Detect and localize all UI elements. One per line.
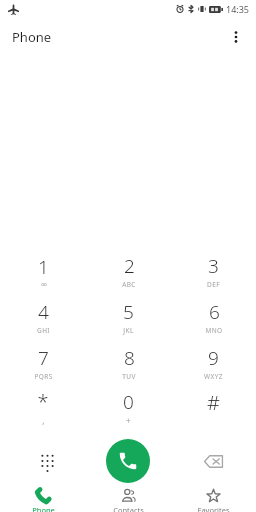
button[interactable]: * <box>0 386 86 428</box>
staticText: Phone <box>12 28 52 46</box>
button[interactable]: Call <box>106 439 150 483</box>
staticText: , <box>42 415 45 426</box>
staticText: ABC <box>122 280 136 289</box>
button[interactable]: 5 <box>86 294 171 340</box>
button[interactable]: 6 <box>171 294 256 340</box>
staticText: 2 <box>124 253 135 279</box>
staticText: 14:35 <box>226 3 250 15</box>
staticText: 0 <box>123 389 134 415</box>
staticText: 1 <box>38 254 49 280</box>
staticText: + <box>126 415 131 426</box>
button[interactable]: 9 <box>171 340 256 386</box>
staticText: Phone <box>32 505 55 512</box>
staticText: PQRS <box>34 372 53 381</box>
staticText: 7 <box>38 345 49 371</box>
button[interactable]: Keypad <box>30 444 64 478</box>
staticText: 3 <box>208 253 219 279</box>
button[interactable]: 7 <box>0 340 86 386</box>
button[interactable]: Favorites <box>171 488 256 512</box>
staticText: Contacts <box>113 505 144 512</box>
staticText: 9 <box>208 345 219 371</box>
button[interactable]: Contacts <box>86 488 171 512</box>
button[interactable]: Phone <box>0 488 86 512</box>
staticText: MNO <box>205 326 223 335</box>
staticText: 5 <box>123 299 134 325</box>
button[interactable]: More options <box>220 21 252 53</box>
button[interactable]: # <box>171 386 256 428</box>
staticText: 8 <box>124 345 135 371</box>
staticText: TUV <box>122 372 136 381</box>
button[interactable]: Backspace <box>196 444 230 478</box>
staticText: WXYZ <box>204 372 223 381</box>
staticText: * <box>37 388 49 415</box>
button[interactable]: 4 <box>0 294 86 340</box>
staticText: 6 <box>209 299 220 325</box>
button[interactable]: 2 <box>86 248 171 294</box>
staticText: ∞ <box>40 280 48 289</box>
staticText: # <box>207 389 220 416</box>
button[interactable]: 8 <box>86 340 171 386</box>
staticText: JKL <box>123 326 134 335</box>
staticText: 4 <box>38 299 49 325</box>
staticText: GHI <box>37 326 50 335</box>
staticText: DEF <box>207 280 220 289</box>
button[interactable]: 1 <box>0 248 86 294</box>
staticText: Favorites <box>197 505 230 512</box>
button[interactable]: 3 <box>171 248 256 294</box>
button[interactable]: 0 <box>86 386 171 428</box>
